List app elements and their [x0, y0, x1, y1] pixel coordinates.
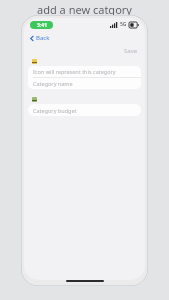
staticText: Icon will represent this category [33, 68, 116, 75]
other: Emoji [32, 59, 37, 64]
staticText: Back [36, 34, 50, 42]
button[interactable]: Category name [28, 78, 141, 89]
button[interactable]: Back [28, 32, 52, 44]
staticText: Category name [33, 80, 73, 87]
staticText: 5G [120, 21, 127, 28]
staticText: add a new catgory [37, 2, 132, 17]
staticText: Save [124, 47, 138, 55]
button[interactable]: Category budget [28, 104, 141, 116]
other: Emoji [32, 97, 37, 102]
staticText: 3:41 [37, 22, 47, 29]
button[interactable]: Save [122, 46, 140, 56]
button[interactable]: Icon will represent this category [28, 66, 141, 77]
staticText: Category budget [33, 107, 77, 114]
